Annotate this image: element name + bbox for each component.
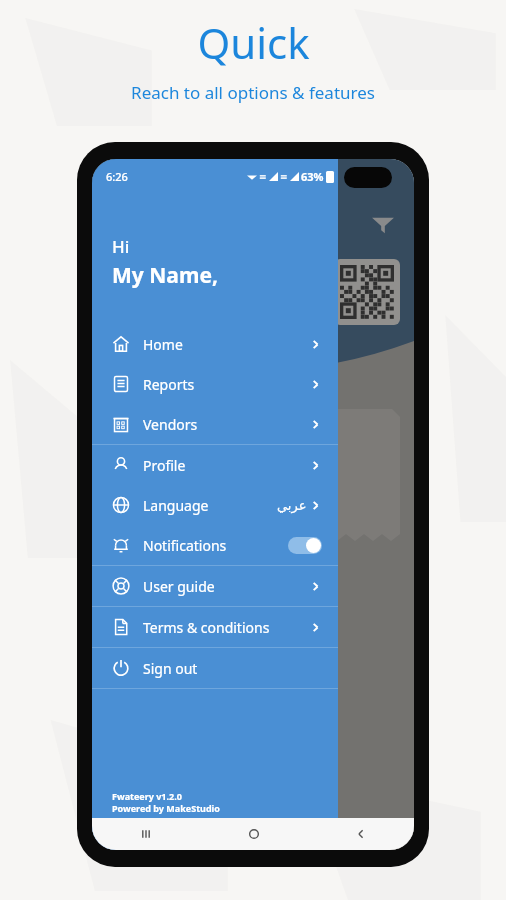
staticText: Language [143,496,209,515]
button[interactable]: Language [92,485,338,525]
button[interactable] [288,537,322,554]
staticText: Supermarket [130,469,210,487]
button[interactable]: Recents [92,818,200,850]
button[interactable]: Profile [92,445,338,485]
button[interactable]: Home [200,818,307,850]
button[interactable]: Reports [92,364,338,404]
staticText: ≡ [280,172,288,182]
button[interactable]: User guide [92,566,338,606]
button[interactable]: Vendors [92,404,338,444]
staticText: Profile [143,456,186,475]
staticText: Powered by MakeStudio [112,802,220,814]
staticText: ≡ [259,172,267,182]
button[interactable]: Sign out [92,648,338,688]
staticText: 12.500 KD [130,505,202,525]
button[interactable]: Filter [370,211,396,237]
button[interactable]: Terms & conditions [92,607,338,647]
staticText: 6:26 [106,169,128,184]
staticText: عربي [277,498,307,513]
staticText: Vendors [143,415,198,434]
staticText: User guide [143,577,215,596]
staticText: Sign out [143,659,198,678]
staticText: Fwateery v1.2.0 [112,790,182,802]
staticText: Terms & conditions [143,618,270,637]
staticText: Notifications [143,536,227,555]
button[interactable]: Home [92,324,338,364]
staticText: Reports [143,375,195,394]
staticText: Quick [197,14,310,71]
staticText: 63% [301,169,324,184]
button[interactable]: Notifications [92,525,338,565]
staticText: Ɫʜ [130,421,157,451]
staticText: Hi [112,235,130,258]
staticText: My Name, [112,261,218,290]
button[interactable]: Back [307,818,414,850]
staticText: Home [143,335,183,354]
staticText: Reach to all options & features [131,81,375,104]
